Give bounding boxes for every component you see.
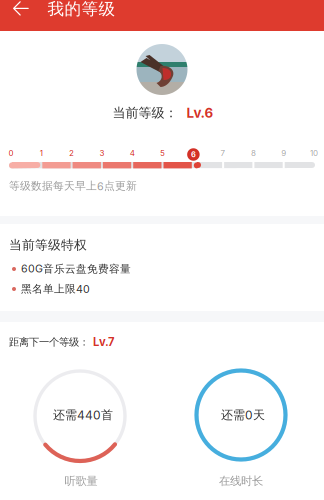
staticText: 当前等级特权 [9,237,87,253]
staticText: 7 [221,148,226,158]
staticText: Lv.7 [93,335,115,349]
staticText: 5 [160,148,165,158]
staticText: 2 [69,148,74,158]
staticText: 0 [8,148,13,158]
staticText: 9 [281,148,286,158]
staticText: 还需440首 [53,407,113,422]
staticText: 黑名单上限40 [21,282,90,296]
staticText: 6 [190,148,195,158]
staticText: 还需0天 [221,407,265,422]
staticText: Lv.6 [186,105,213,121]
staticText: 4 [130,148,135,158]
staticText: 距离下一个等级： [9,335,89,348]
staticText: 10 [310,148,318,158]
staticText: 我的等级 [47,0,115,19]
staticText: 等级数据每天早上6点更新 [9,179,137,193]
staticText: 3 [99,148,104,158]
staticText: 听歌量 [64,474,97,488]
staticText: 在线时长 [219,474,263,488]
staticText: 当前等级： [112,105,177,121]
staticText: 60G音乐云盘免费容量 [21,262,131,276]
staticText: 8 [251,148,256,158]
staticText: 1 [40,148,43,158]
staticText: 6 [191,150,196,159]
button[interactable]: 返回 [8,0,34,21]
